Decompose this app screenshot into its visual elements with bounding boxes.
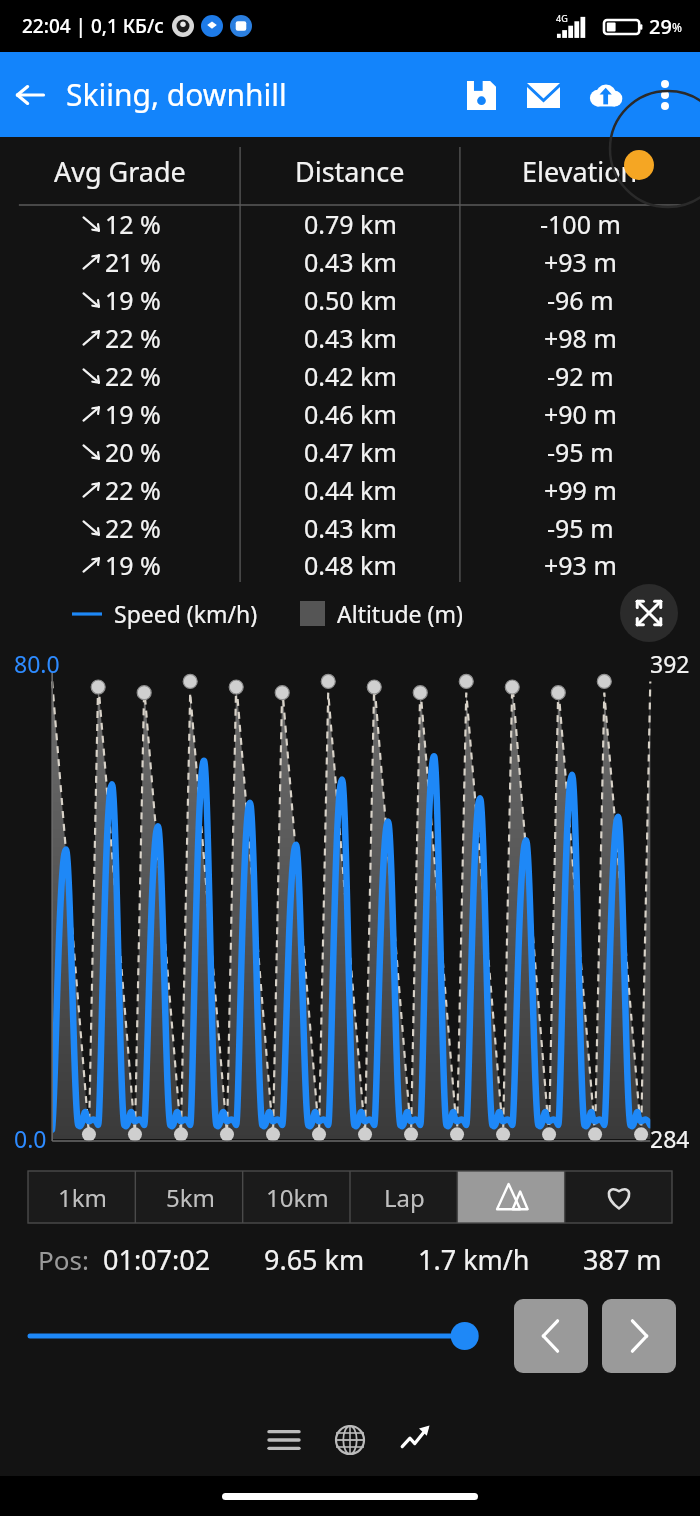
button[interactable]: Fullscreen — [620, 584, 678, 642]
staticText: +98 m — [544, 321, 617, 355]
staticText: 29 — [649, 13, 672, 40]
staticText: +93 m — [544, 245, 617, 279]
staticText: 80.0 — [14, 648, 60, 679]
staticText: Pos: — [38, 1242, 89, 1277]
staticText: 22 % — [105, 321, 161, 355]
button[interactable]: Back — [0, 65, 60, 125]
staticText: Distance — [295, 153, 405, 190]
staticText: 0.43 km — [304, 245, 397, 279]
staticText: 0.0 — [14, 1123, 47, 1154]
staticText: 0.43 km — [304, 321, 397, 355]
staticText: Skiing, downhill — [66, 74, 287, 115]
staticText: 1km — [58, 1181, 107, 1214]
staticText: 0.43 km — [304, 511, 397, 545]
staticText: 10km — [266, 1181, 329, 1214]
staticText: 12 % — [105, 207, 161, 241]
staticText: 01:07:02 — [103, 1241, 211, 1278]
staticText: 9.65 km — [264, 1241, 365, 1278]
button[interactable]: 19 % — [0, 395, 700, 433]
staticText: +93 m — [544, 548, 617, 582]
staticText: 20 % — [105, 435, 161, 469]
button[interactable]: 10km — [244, 1171, 351, 1223]
staticText: Lap — [384, 1181, 425, 1214]
button[interactable]: Save — [450, 64, 512, 126]
button[interactable]: List — [256, 1412, 312, 1468]
staticText: -100 m — [540, 207, 621, 241]
staticText: 22 % — [105, 359, 161, 393]
button[interactable]: 1km — [28, 1171, 136, 1223]
staticText: 1.7 km/h — [418, 1241, 530, 1278]
button[interactable]: 20 % — [0, 433, 700, 471]
button[interactable]: Email — [512, 64, 574, 126]
staticText: Elevation — [522, 153, 638, 190]
staticText: +90 m — [544, 397, 617, 431]
staticText: 0.46 km — [304, 397, 397, 431]
staticText: 22:04 | 0,1 КБ/с — [22, 13, 164, 39]
button[interactable]: 22 % — [0, 509, 700, 547]
staticText: -96 m — [547, 283, 614, 317]
staticText: 19 % — [105, 548, 161, 582]
staticText: 19 % — [105, 397, 161, 431]
button[interactable]: Upload — [574, 64, 636, 126]
button[interactable]: 5km — [136, 1171, 244, 1223]
staticText: 22 % — [105, 511, 161, 545]
button[interactable]: Graphs — [388, 1412, 444, 1468]
button[interactable]: 19 % — [0, 281, 700, 319]
button[interactable]: Lap — [351, 1171, 458, 1223]
staticText: 392 — [650, 648, 690, 679]
staticText: -92 m — [547, 359, 614, 393]
staticText: -95 m — [547, 511, 614, 545]
staticText: 19 % — [105, 283, 161, 317]
button[interactable]: 21 % — [0, 243, 700, 281]
staticText: 0.42 km — [304, 359, 397, 393]
staticText: Speed (km/h) — [114, 598, 258, 629]
button[interactable]: Position slider — [30, 1308, 490, 1364]
staticText: 387 m — [583, 1241, 662, 1278]
staticText: Altitude (m) — [337, 598, 463, 629]
staticText: 0.50 km — [304, 283, 397, 317]
button[interactable]: 22 % — [0, 319, 700, 357]
staticText: +99 m — [544, 473, 617, 507]
button[interactable]: Elevation — [458, 1171, 565, 1223]
button[interactable]: More options — [636, 66, 694, 124]
staticText: -95 m — [547, 435, 614, 469]
staticText: 0.47 km — [304, 435, 397, 469]
staticText: 0.48 km — [304, 548, 397, 582]
staticText: 22 % — [105, 473, 161, 507]
button[interactable]: Next — [602, 1299, 676, 1373]
staticText: 21 % — [105, 245, 161, 279]
staticText: Avg Grade — [54, 153, 186, 190]
button[interactable]: Map — [322, 1412, 378, 1468]
button[interactable]: 19 % — [0, 547, 700, 582]
staticText: 0.44 km — [304, 473, 397, 507]
staticText: 284 — [650, 1123, 690, 1154]
staticText: % — [672, 19, 682, 35]
button[interactable]: 12 % — [0, 205, 700, 243]
button[interactable]: 22 % — [0, 471, 700, 509]
button[interactable]: Previous — [514, 1299, 588, 1373]
button[interactable]: Heart rate — [565, 1171, 672, 1223]
button[interactable]: 22 % — [0, 357, 700, 395]
staticText: 0.79 km — [304, 207, 397, 241]
staticText: 5km — [166, 1181, 215, 1214]
staticText: 4G — [556, 12, 568, 24]
